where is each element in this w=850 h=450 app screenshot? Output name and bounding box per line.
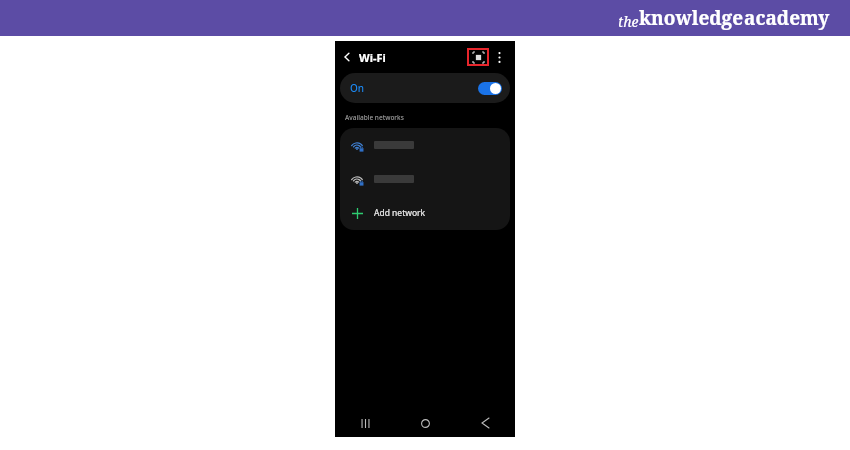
staticText: Wi-Fi	[359, 50, 386, 65]
button[interactable]: Back	[455, 409, 515, 437]
button[interactable]: On	[340, 73, 510, 103]
button[interactable]: Recent apps	[335, 409, 395, 437]
staticText: knowledge	[639, 5, 744, 31]
staticText: On	[350, 81, 365, 95]
button[interactable]	[340, 128, 510, 162]
staticText: Add network	[374, 207, 426, 219]
button[interactable]: Scan QR code	[467, 48, 489, 66]
button[interactable]: Wi-Fi toggle	[478, 82, 502, 95]
staticText: academy	[744, 5, 830, 31]
button[interactable]: Back	[338, 48, 356, 66]
button[interactable]: Add network	[340, 196, 510, 230]
button[interactable]: Home	[395, 409, 455, 437]
staticText: Available networks	[345, 113, 404, 122]
staticText: the	[618, 12, 639, 31]
button[interactable]: More options	[491, 49, 507, 65]
button[interactable]	[340, 162, 510, 196]
